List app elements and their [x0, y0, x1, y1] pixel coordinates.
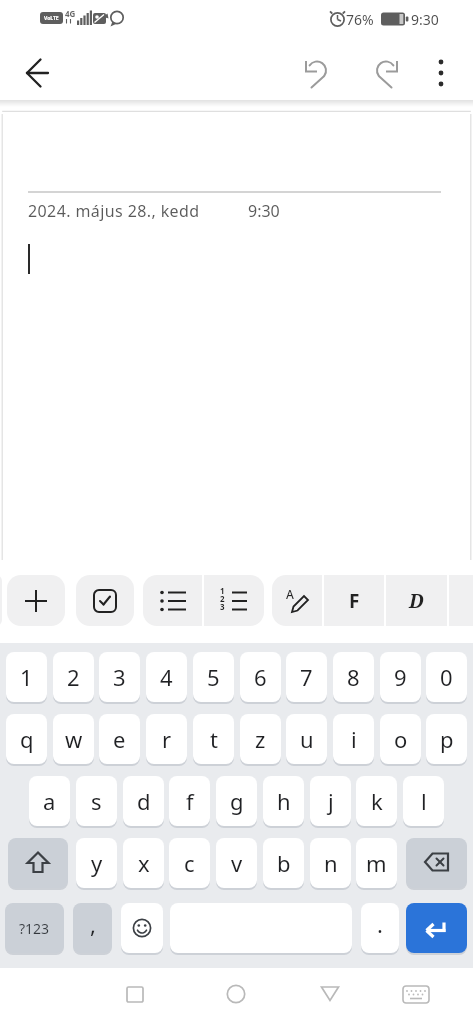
staticText: 9:30 — [411, 10, 439, 29]
staticText: b — [277, 848, 291, 878]
staticText: 5 — [207, 662, 220, 692]
button[interactable]: e — [99, 714, 140, 764]
button[interactable]: a — [29, 776, 70, 826]
staticText: D — [409, 588, 424, 614]
button[interactable]: h — [263, 776, 304, 826]
button[interactable] — [121, 903, 163, 953]
staticText: y — [91, 848, 103, 878]
button[interactable]: x — [123, 838, 164, 888]
staticText: 8 — [347, 662, 360, 692]
staticText: s — [91, 786, 102, 816]
button[interactable]: n — [310, 838, 351, 888]
button[interactable]: m — [356, 838, 397, 888]
button[interactable]: 4 — [146, 652, 187, 702]
button[interactable]: g — [216, 776, 257, 826]
button[interactable]: i — [333, 714, 374, 764]
button[interactable]: 1 — [204, 575, 264, 626]
button[interactable]: w — [53, 714, 94, 764]
button[interactable]: j — [310, 776, 351, 826]
button[interactable] — [310, 974, 350, 1014]
button[interactable]: 7 — [286, 652, 327, 702]
button[interactable] — [115, 974, 155, 1014]
staticText: 7 — [300, 662, 313, 692]
button[interactable]: r — [146, 714, 187, 764]
button[interactable]: . — [361, 903, 399, 953]
button[interactable] — [425, 53, 457, 93]
button[interactable]: s — [76, 776, 117, 826]
button[interactable]: b — [263, 838, 304, 888]
staticText: 76% — [346, 10, 374, 29]
button[interactable]: D — [386, 575, 447, 626]
staticText: 1 — [220, 585, 225, 596]
button[interactable]: c — [169, 838, 210, 888]
button[interactable]: d — [123, 776, 164, 826]
button[interactable]: 8 — [333, 652, 374, 702]
staticText: 4G — [65, 8, 76, 19]
button[interactable]: ?123 — [5, 903, 64, 953]
staticText: g — [230, 786, 244, 816]
staticText: p — [440, 724, 454, 754]
staticText: x — [138, 848, 150, 878]
staticText: e — [113, 724, 126, 754]
button[interactable]: 0 — [426, 652, 467, 702]
button[interactable] — [7, 575, 65, 626]
button[interactable] — [143, 575, 203, 626]
button[interactable]: v — [216, 838, 257, 888]
staticText: 1 — [20, 662, 33, 692]
staticText: 2 — [220, 593, 225, 604]
button[interactable]: p — [426, 714, 467, 764]
button[interactable]: , — [73, 903, 112, 953]
button[interactable]: 2 — [53, 652, 94, 702]
staticText: k — [371, 786, 383, 816]
staticText: q — [20, 724, 34, 754]
staticText: 9:30 — [248, 200, 280, 222]
button[interactable] — [14, 53, 62, 93]
button[interactable]: u — [286, 714, 327, 764]
button[interactable] — [298, 53, 338, 93]
button[interactable] — [76, 575, 134, 626]
staticText: u — [300, 724, 314, 754]
staticText: t — [210, 724, 218, 754]
button[interactable]: o — [380, 714, 421, 764]
staticText: A — [286, 586, 294, 602]
button[interactable] — [406, 903, 467, 953]
staticText: v — [231, 848, 243, 878]
button[interactable]: A — [272, 575, 322, 626]
button[interactable]: y — [76, 838, 117, 888]
button[interactable]: 5 — [193, 652, 234, 702]
button[interactable] — [216, 974, 256, 1014]
button[interactable]: 6 — [240, 652, 281, 702]
staticText: h — [277, 786, 291, 816]
button[interactable]: z — [240, 714, 281, 764]
staticText: 3 — [220, 601, 225, 612]
staticText: c — [184, 848, 195, 878]
button[interactable]: F — [324, 575, 384, 626]
staticText: o — [394, 724, 408, 754]
button[interactable]: q — [6, 714, 47, 764]
button[interactable]: 3 — [99, 652, 140, 702]
staticText: l — [421, 786, 427, 816]
button[interactable] — [365, 53, 405, 93]
staticText: ?123 — [19, 919, 50, 938]
button[interactable] — [8, 838, 68, 888]
button[interactable]: 1 — [6, 652, 47, 702]
staticText: 4 — [160, 662, 173, 692]
button[interactable] — [396, 974, 436, 1014]
button[interactable]: l — [403, 776, 444, 826]
staticText: VoLTE — [44, 15, 59, 22]
staticText: 6 — [254, 662, 267, 692]
staticText: i — [351, 724, 357, 754]
staticText: a — [43, 786, 56, 816]
button[interactable]: 9 — [380, 652, 421, 702]
button[interactable] — [406, 838, 467, 888]
button[interactable]: t — [193, 714, 234, 764]
staticText: w — [65, 724, 83, 754]
button[interactable]: f — [169, 776, 210, 826]
staticText: 0 — [440, 662, 453, 692]
staticText: F — [349, 588, 360, 614]
staticText: 2024. május 28., kedd — [28, 200, 200, 222]
staticText: m — [366, 848, 387, 878]
staticText: n — [324, 848, 338, 878]
button[interactable]: k — [356, 776, 397, 826]
